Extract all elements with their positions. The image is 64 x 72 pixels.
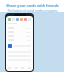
staticText: The fastest of social media programs xyxy=(7,9,58,13)
button[interactable]: App xyxy=(6,13,33,72)
button[interactable]: App xyxy=(24,18,27,21)
staticText: Share your cards with friends xyxy=(6,3,59,8)
button[interactable]: App xyxy=(20,18,23,21)
button[interactable]: Selected card xyxy=(8,44,12,48)
button[interactable]: App xyxy=(16,18,19,21)
button[interactable]: App xyxy=(8,18,11,21)
